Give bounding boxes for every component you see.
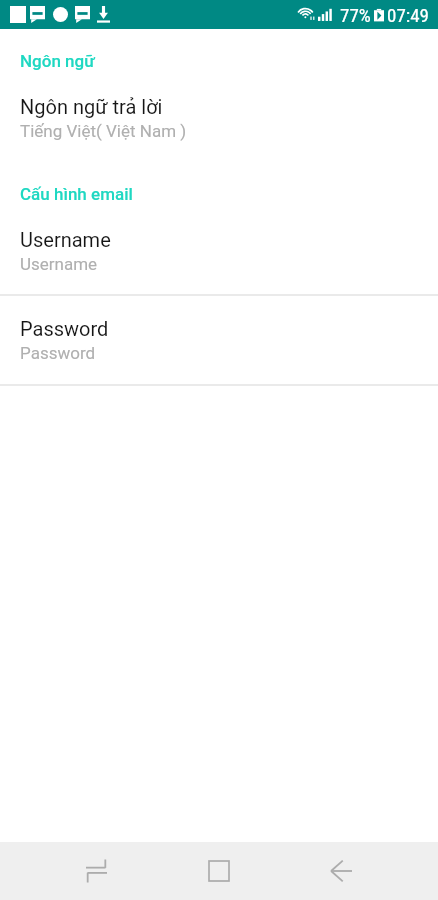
staticText: Password bbox=[20, 317, 109, 340]
button[interactable]: Home bbox=[196, 842, 242, 900]
staticText: 07:49 bbox=[387, 4, 429, 26]
staticText: Ngôn ngữ bbox=[20, 51, 95, 71]
button[interactable]: Recents bbox=[73, 842, 119, 900]
button[interactable]: Back bbox=[318, 842, 364, 900]
staticText: Username bbox=[20, 254, 98, 274]
staticText: 77% bbox=[340, 4, 371, 26]
staticText: Ngôn ngữ trả lời bbox=[20, 95, 163, 118]
staticText: Username bbox=[20, 228, 111, 251]
button[interactable]: Username bbox=[0, 210, 438, 296]
button[interactable]: Ngôn ngữ trả lời bbox=[0, 77, 438, 163]
button[interactable]: Password bbox=[0, 299, 438, 385]
staticText: Cấu hình email bbox=[20, 184, 133, 204]
staticText: Tiếng Việt( Việt Nam ) bbox=[20, 121, 187, 141]
staticText: Password bbox=[20, 343, 96, 363]
